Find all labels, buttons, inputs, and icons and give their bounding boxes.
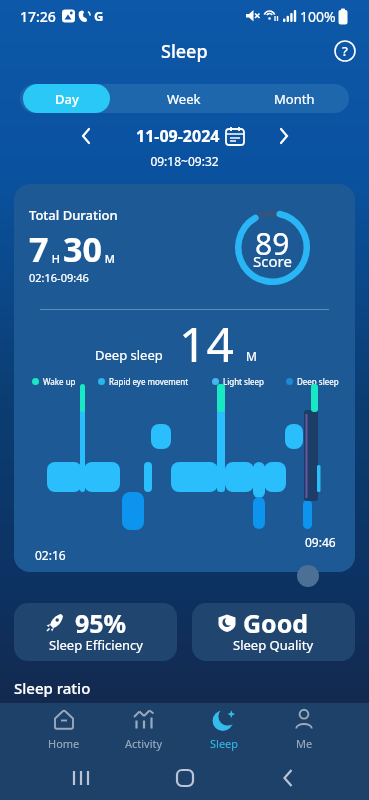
- button[interactable]: [236, 755, 339, 800]
- button[interactable]: [133, 755, 236, 800]
- staticText: Sleep ratio: [14, 678, 91, 698]
- staticText: 11-09-2024: [136, 125, 220, 147]
- staticText: 30: [63, 226, 102, 272]
- button[interactable]: [271, 124, 295, 148]
- staticText: Wake up: [43, 376, 76, 387]
- staticText: Sleep: [161, 39, 208, 64]
- button[interactable]: Week: [129, 84, 239, 113]
- button[interactable]: Me: [264, 703, 344, 755]
- button[interactable]: 95%: [14, 603, 177, 661]
- staticText: Sleep: [210, 736, 239, 751]
- staticText: Good: [243, 606, 309, 640]
- staticText: Home: [48, 736, 80, 751]
- staticText: G: [94, 7, 104, 25]
- staticText: Score: [253, 251, 292, 271]
- staticText: M: [102, 251, 115, 266]
- staticText: 7: [29, 226, 49, 272]
- staticText: Rapid eye movement: [109, 376, 189, 387]
- staticText: 09:46: [305, 534, 336, 550]
- button[interactable]: Home: [24, 703, 104, 755]
- staticText: 14: [179, 311, 234, 376]
- button[interactable]: ?: [334, 40, 356, 62]
- staticText: 02:16-09:46: [29, 270, 89, 285]
- staticText: Week: [167, 90, 201, 108]
- button[interactable]: [74, 124, 98, 148]
- staticText: ?: [342, 42, 348, 60]
- button[interactable]: Good: [192, 603, 355, 661]
- button[interactable]: Month: [239, 84, 349, 113]
- staticText: Deep sleep: [95, 346, 163, 364]
- button[interactable]: Day: [23, 84, 110, 113]
- staticText: Activity: [125, 736, 163, 751]
- staticText: 09:18~09:32: [0, 153, 369, 169]
- staticText: H: [49, 251, 63, 266]
- staticText: 17:26: [20, 7, 56, 26]
- staticText: 02:16: [35, 547, 66, 563]
- staticText: 95%: [75, 606, 127, 640]
- staticText: Total Duration: [29, 206, 118, 224]
- button[interactable]: [225, 126, 245, 146]
- button[interactable]: Activity: [104, 703, 184, 755]
- staticText: Month: [274, 90, 315, 108]
- staticText: M: [246, 348, 257, 364]
- staticText: Light sleep: [223, 376, 264, 387]
- staticText: Deep sleep: [297, 376, 339, 387]
- staticText: 89: [255, 223, 290, 264]
- button[interactable]: [30, 755, 133, 800]
- staticText: Me: [296, 736, 313, 751]
- staticText: Sleep Efficiency: [49, 636, 143, 654]
- staticText: Sleep Quality: [233, 636, 314, 654]
- button[interactable]: Sleep: [184, 703, 264, 755]
- staticText: 100%: [300, 7, 336, 26]
- staticText: Day: [55, 90, 79, 108]
